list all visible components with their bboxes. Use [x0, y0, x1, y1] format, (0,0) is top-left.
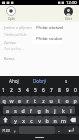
button[interactable]: Ahoj — [0, 76, 27, 85]
staticText: 3 — [18, 87, 21, 94]
button[interactable]: k — [59, 106, 67, 114]
staticText: u — [49, 97, 53, 104]
staticText: f — [30, 107, 32, 114]
staticText: y — [14, 117, 17, 124]
button[interactable]: . — [55, 126, 63, 134]
staticText: Přidat soubor — [36, 36, 63, 42]
staticText: h — [45, 107, 49, 114]
staticText: Jméno a příjmení — [4, 25, 33, 30]
button[interactable]: p — [71, 96, 79, 104]
button[interactable]: 5 — [31, 85, 39, 95]
button[interactable]: 2 — [7, 85, 15, 95]
staticText: Telefonní číslo — [4, 32, 27, 37]
button[interactable]: m — [59, 116, 67, 124]
staticText: k — [62, 107, 65, 114]
button[interactable]: i — [55, 96, 63, 104]
button[interactable]: 1 — [0, 85, 7, 95]
staticText: Dobrý — [33, 78, 47, 84]
staticText: o — [65, 97, 69, 104]
staticText: 4 — [26, 87, 29, 94]
button[interactable]: e — [15, 96, 23, 104]
button[interactable]: v — [35, 116, 43, 124]
staticText: v — [38, 117, 41, 124]
staticText: 0 — [74, 87, 77, 94]
staticText: x — [22, 117, 25, 124]
button[interactable]: n — [51, 116, 59, 124]
button[interactable]: t — [31, 96, 39, 104]
button[interactable]: c — [27, 116, 35, 124]
staticText: i — [58, 97, 60, 104]
staticText: j — [54, 107, 56, 114]
button[interactable]: Profile — [64, 7, 73, 21]
button[interactable]: l — [67, 106, 75, 114]
button[interactable]: Add — [6, 6, 16, 21]
staticText: c — [30, 117, 33, 124]
staticText: t — [34, 97, 36, 104]
staticText: ?123 — [2, 128, 10, 133]
staticText: s — [65, 78, 68, 84]
staticText: 9 — [66, 87, 69, 94]
button[interactable]: u — [47, 96, 55, 104]
staticText: d — [21, 107, 25, 114]
button[interactable]: 3 — [15, 85, 23, 95]
button[interactable]: r — [23, 96, 31, 104]
staticText: p — [73, 97, 77, 104]
staticText: e — [18, 97, 21, 104]
button[interactable]: x — [19, 116, 27, 124]
button[interactable]: a — [3, 106, 11, 114]
staticText: s — [14, 107, 17, 114]
button[interactable]: j — [51, 106, 59, 114]
button[interactable]: 9 — [63, 85, 71, 95]
button[interactable]: o — [63, 96, 71, 104]
button[interactable]: 7 — [47, 85, 55, 95]
staticText: z — [42, 97, 45, 104]
button[interactable]: s — [53, 76, 79, 85]
button[interactable]: 4 — [23, 85, 31, 95]
staticText: Účet — [65, 17, 72, 21]
button[interactable]: w — [7, 96, 15, 104]
staticText: l — [70, 107, 72, 114]
button[interactable]: 8 — [55, 85, 63, 95]
staticText: b — [45, 117, 49, 124]
staticText: q — [2, 97, 6, 104]
staticText: m — [61, 117, 66, 124]
button[interactable]: Enter — [63, 126, 79, 134]
staticText: . — [58, 127, 60, 134]
staticText: 12:00 — [66, 0, 77, 5]
button[interactable]: Backspace — [67, 116, 79, 124]
button[interactable]: , — [11, 126, 19, 134]
staticText: r — [26, 97, 29, 104]
button[interactable]: q — [0, 96, 7, 104]
staticText: n — [53, 117, 57, 124]
button[interactable]: z — [39, 96, 47, 104]
button[interactable]: Shift — [0, 116, 11, 124]
button[interactable]: s — [11, 106, 19, 114]
staticText: 6 — [42, 87, 45, 94]
staticText: , — [14, 127, 16, 134]
button[interactable]: f — [27, 106, 35, 114]
staticText: Konec — [4, 56, 15, 61]
button[interactable]: ?123 — [0, 126, 11, 134]
staticText: a — [6, 107, 9, 114]
button[interactable]: Přidat obrázek — [32, 22, 63, 33]
staticText: g — [37, 107, 41, 114]
button[interactable]: y — [11, 116, 19, 124]
button[interactable]: b — [43, 116, 51, 124]
staticText: 1 — [2, 87, 5, 94]
staticText: Přidat obrázek — [36, 25, 63, 31]
button[interactable]: Dobrý — [27, 76, 53, 85]
staticText: 7 — [50, 87, 53, 94]
button[interactable]: Přidat soubor — [32, 33, 63, 44]
staticText: 2 — [10, 87, 13, 94]
button[interactable]: d — [19, 106, 27, 114]
button[interactable]: h — [43, 106, 51, 114]
staticText: Ahoj — [9, 78, 19, 84]
staticText: Text zprávy ... — [4, 47, 25, 51]
staticText: Zpět — [8, 17, 15, 21]
staticText: w — [9, 97, 14, 104]
button[interactable]: 0 — [71, 85, 79, 95]
button[interactable]: g — [35, 106, 43, 114]
staticText: Zpráva — [4, 40, 16, 45]
button[interactable]: 6 — [39, 85, 47, 95]
